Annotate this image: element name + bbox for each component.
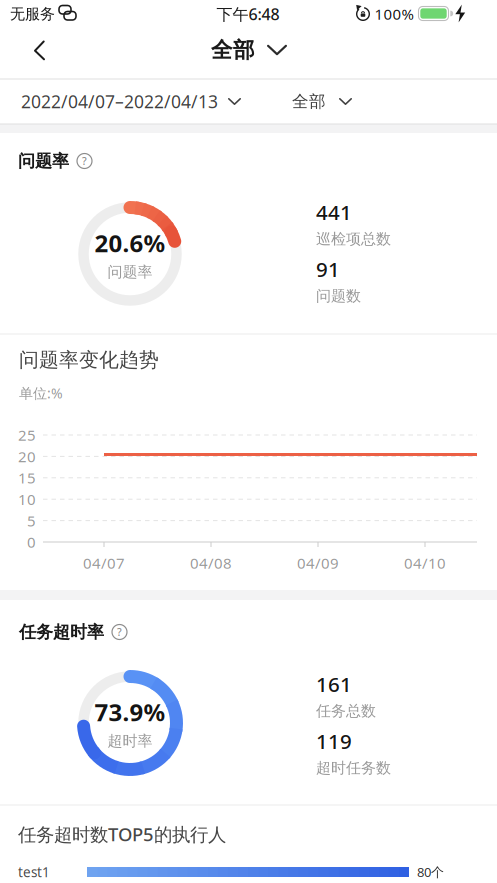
staticText: 单位:% bbox=[19, 383, 63, 403]
button[interactable]: 全部 bbox=[0, 0, 497, 883]
staticText: 问题率 bbox=[107, 263, 152, 281]
staticText: 下午6:48 bbox=[216, 3, 279, 25]
button[interactable]: Help bbox=[112, 624, 127, 639]
staticText: 2022/04/07–2022/04/13 bbox=[21, 90, 218, 113]
staticText: test1 bbox=[18, 863, 50, 881]
staticText: 问题率 bbox=[18, 150, 69, 172]
staticText: 04/09 bbox=[297, 553, 339, 573]
staticText: 问题率变化趋势 bbox=[19, 347, 159, 372]
staticText: 问题数 bbox=[316, 287, 361, 305]
staticText: 全部 bbox=[292, 91, 326, 112]
staticText: 161 bbox=[316, 670, 352, 698]
staticText: 无服务 bbox=[10, 5, 55, 23]
staticText: 25 bbox=[18, 425, 36, 445]
staticText: 100% bbox=[374, 4, 413, 24]
staticText: 20 bbox=[18, 446, 36, 467]
staticText: 15 bbox=[18, 468, 36, 488]
staticText: 20.6% bbox=[94, 227, 165, 259]
button[interactable]: 2022/04/07–2022/04/13 bbox=[0, 0, 497, 883]
button[interactable]: Back bbox=[0, 0, 60, 70]
staticText: 全部 bbox=[211, 36, 255, 64]
staticText: 04/10 bbox=[404, 553, 446, 573]
staticText: 任务超时率 bbox=[19, 621, 104, 643]
staticText: 91 bbox=[316, 255, 340, 283]
staticText: 73.9% bbox=[94, 696, 165, 728]
staticText: ? bbox=[82, 154, 87, 168]
staticText: 441 bbox=[316, 198, 352, 226]
staticText: 80个 bbox=[417, 863, 444, 881]
staticText: 巡检项总数 bbox=[316, 230, 391, 248]
staticText: 超时任务数 bbox=[316, 759, 391, 777]
staticText: 任务超时数TOP5的执行人 bbox=[18, 821, 226, 847]
staticText: 10 bbox=[18, 489, 36, 509]
staticText: ? bbox=[117, 625, 122, 639]
staticText: 任务总数 bbox=[316, 702, 376, 720]
button[interactable]: 全部 bbox=[0, 0, 497, 883]
button[interactable]: Help bbox=[77, 153, 92, 168]
staticText: 04/07 bbox=[83, 553, 125, 573]
staticText: 0 bbox=[27, 532, 36, 552]
staticText: 04/08 bbox=[190, 553, 232, 573]
staticText: 超时率 bbox=[107, 732, 152, 750]
staticText: 5 bbox=[27, 510, 36, 531]
staticText: 119 bbox=[316, 727, 352, 755]
